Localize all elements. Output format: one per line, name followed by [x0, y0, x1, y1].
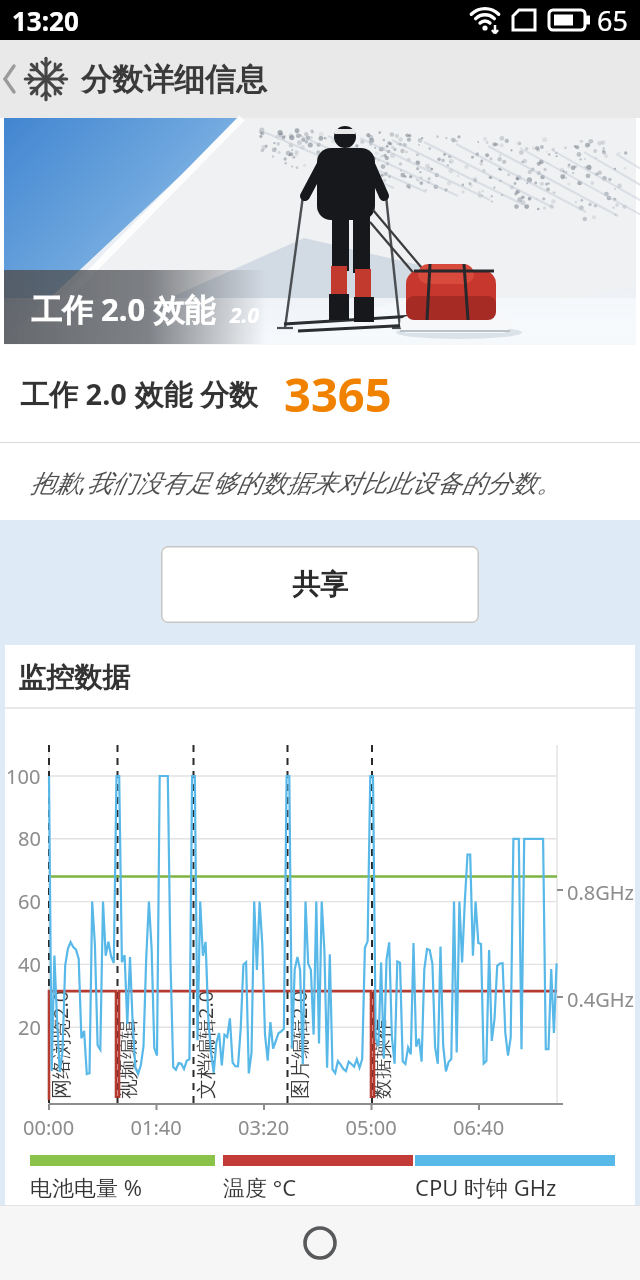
staticText: 3365 — [284, 362, 392, 426]
staticText: 工作 2.0 效能 分数 — [20, 374, 258, 414]
staticText: 分数详细信息 — [81, 60, 267, 99]
button[interactable]: 共享 — [161, 546, 479, 623]
staticText: 共享 — [292, 567, 348, 602]
staticText: 13:20 — [12, 3, 79, 38]
staticText: 65 — [597, 2, 628, 39]
button[interactable] — [298, 1221, 342, 1265]
button[interactable]: 分数详细信息 — [2, 40, 267, 118]
staticText: 抱歉,我们没有足够的数据来对比此设备的分数。 — [30, 465, 562, 499]
